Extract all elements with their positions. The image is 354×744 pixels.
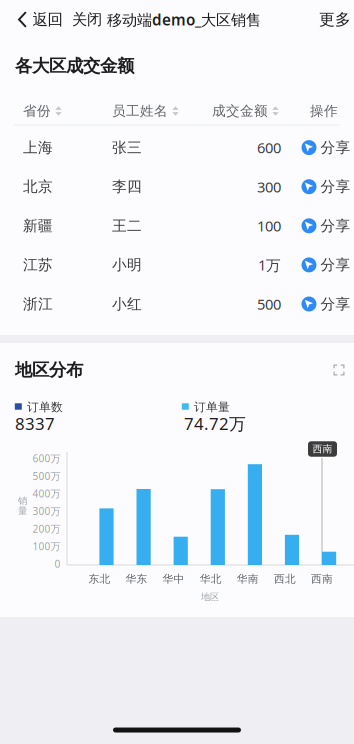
staticText: 张三 [112,138,142,157]
staticText: 订单量 [194,400,230,414]
staticText: 分享 [320,256,350,274]
staticText: 100 [257,216,281,236]
staticText: 操作 [310,102,338,119]
staticText: 小明 [112,256,142,274]
staticText: 成交金额 [212,102,268,119]
staticText: 西南 [311,572,333,586]
staticText: 省份 [23,102,51,119]
staticText: 华北 [200,572,222,586]
staticText: 200万 [32,522,60,536]
staticText: 小红 [112,295,142,313]
button[interactable]: 返回 [12,3,67,36]
staticText: 西南 [312,443,332,455]
staticText: 8337 [15,412,55,435]
staticText: 华南 [237,572,259,586]
staticText: 华中 [163,572,185,586]
button[interactable]: 江苏 [0,40,354,335]
staticText: 订单数 [27,400,63,414]
staticText: 江苏 [23,256,53,274]
staticText: 上海 [23,138,53,157]
staticText: 西北 [274,572,296,586]
staticText: 销 [18,495,27,507]
staticText: 0 [54,557,60,571]
button[interactable]: 北京 [0,40,354,335]
staticText: 1万 [258,255,281,275]
staticText: 74.72万 [184,412,246,435]
button[interactable]: 新疆 [0,40,354,335]
staticText: 各大区成交金额 [15,55,134,77]
button[interactable]: 上海 [0,40,354,335]
staticText: 分享 [320,217,350,235]
staticText: 移动端demo_大区销售 [107,9,261,30]
staticText: 王二 [112,217,142,235]
staticText: 李四 [112,177,142,196]
button[interactable]: 关闭 [67,1,107,38]
button[interactable]: 全屏 [333,364,344,375]
staticText: 华东 [125,572,147,586]
staticText: 更多 [319,10,351,29]
button[interactable]: 更多 [313,1,354,38]
staticText: 地区分布 [15,359,83,381]
staticText: 新疆 [23,217,53,235]
staticText: 北京 [23,177,53,196]
staticText: 500 [257,294,281,314]
button[interactable]: 浙江 [0,40,354,335]
staticText: 分享 [320,138,350,157]
staticText: 返回 [32,10,62,29]
staticText: 300万 [32,504,60,518]
staticText: 分享 [320,177,350,196]
staticText: 量 [18,505,27,517]
staticText: 关闭 [72,10,102,29]
staticText: 400万 [32,487,60,500]
staticText: 300 [257,177,281,197]
staticText: 地区 [201,591,219,603]
staticText: 100万 [32,539,60,553]
staticText: 600万 [32,451,60,465]
staticText: 员工姓名 [112,102,168,119]
staticText: 500万 [32,469,60,483]
staticText: 浙江 [23,295,53,313]
staticText: 600 [257,138,281,158]
staticText: 分享 [320,295,350,313]
staticText: 东北 [88,572,110,586]
